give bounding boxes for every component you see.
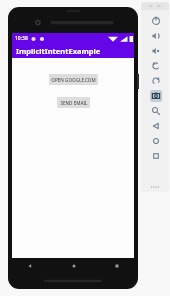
staticText: ImplicitIntentExample xyxy=(16,46,101,56)
button[interactable]: Volume up xyxy=(148,28,163,43)
button[interactable]: Home xyxy=(148,133,163,148)
button[interactable]: Recent apps xyxy=(95,258,138,274)
button[interactable]: Back xyxy=(148,118,163,133)
button[interactable]: Rotate left xyxy=(148,58,163,73)
staticText: 10:38 xyxy=(15,35,28,42)
button[interactable]: Rotate right xyxy=(148,73,163,88)
button[interactable]: Power xyxy=(148,13,163,28)
button[interactable]: Home xyxy=(52,258,95,274)
button[interactable]: More options xyxy=(141,182,169,192)
button[interactable]: SEND EMAIL xyxy=(57,97,90,108)
button[interactable]: Take screenshot xyxy=(148,88,163,103)
button[interactable]: OPEN GOOGLE.COM xyxy=(49,74,98,85)
staticText: OPEN GOOGLE.COM xyxy=(51,77,96,83)
button[interactable]: Zoom xyxy=(148,103,163,118)
button[interactable]: Volume down xyxy=(148,43,163,58)
button[interactable]: Overview xyxy=(148,148,163,163)
button[interactable]: Back xyxy=(8,258,52,274)
staticText: SEND EMAIL xyxy=(60,100,88,106)
